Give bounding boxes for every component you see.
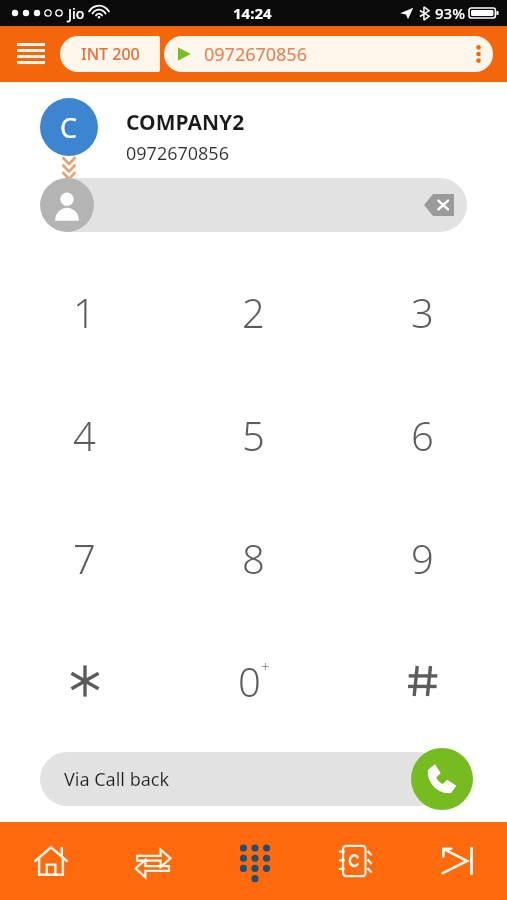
staticText: 0972670856	[204, 42, 307, 67]
button[interactable]: Via Call back	[40, 752, 445, 806]
staticText: Jio	[68, 4, 85, 23]
button[interactable]: 3	[338, 250, 507, 373]
button[interactable]	[0, 619, 169, 742]
staticText: 4	[73, 408, 96, 462]
button[interactable]: 7	[0, 496, 169, 619]
staticText: 8	[242, 531, 265, 585]
button[interactable]: 4	[0, 373, 169, 496]
staticText: 9	[411, 531, 434, 585]
staticText: 5	[242, 408, 265, 462]
button[interactable]: INT 200	[60, 36, 160, 72]
staticText: INT 200	[81, 43, 140, 65]
button[interactable]: 5	[169, 373, 338, 496]
staticText: +	[261, 656, 270, 676]
button[interactable]: Contacts	[305, 822, 406, 900]
button[interactable]: Menu	[14, 37, 48, 71]
button[interactable]	[338, 619, 507, 742]
staticText: Via Call back	[64, 767, 170, 792]
button[interactable]: Backspace	[40, 178, 467, 232]
staticText: 3	[411, 285, 434, 339]
button[interactable]: 1	[0, 250, 169, 373]
button[interactable]: Home	[0, 822, 102, 900]
staticText: 0	[238, 654, 261, 708]
staticText: COMPANY2	[126, 108, 245, 137]
button[interactable]: 8	[169, 496, 338, 619]
button[interactable]: 2	[169, 250, 338, 373]
staticText: 14:24	[233, 3, 272, 23]
button[interactable]: 0972670856	[164, 36, 493, 72]
staticText: 1	[73, 285, 96, 339]
button[interactable]: C	[40, 98, 98, 156]
staticText: 6	[411, 408, 434, 462]
button[interactable]: 0	[169, 619, 338, 742]
button[interactable]: 9	[338, 496, 507, 619]
staticText: 0972670856	[126, 141, 229, 166]
button[interactable]: Call	[411, 748, 473, 810]
button[interactable]: 6	[338, 373, 507, 496]
button[interactable]: More options	[405, 759, 431, 799]
button[interactable]: Dialpad	[204, 822, 305, 900]
staticText: 7	[73, 531, 96, 585]
button[interactable]: Transfer	[102, 822, 204, 900]
staticText: 93%	[435, 3, 465, 23]
button[interactable]: Backspace	[417, 183, 461, 227]
button[interactable]: Forward	[406, 822, 507, 900]
staticText: 2	[242, 285, 265, 339]
staticText: C	[60, 109, 78, 146]
